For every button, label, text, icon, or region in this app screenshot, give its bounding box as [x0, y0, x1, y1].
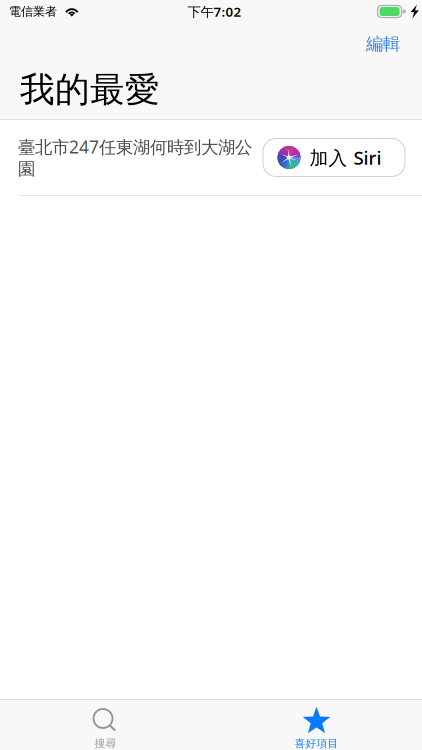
staticText: 電信業者 — [9, 4, 57, 19]
staticText: 搜尋 — [94, 737, 116, 750]
staticText: 臺北市247任東湖何時到大湖公園 — [18, 135, 252, 180]
button[interactable]: 加入 Siri — [263, 138, 405, 176]
staticText: 編輯 — [366, 33, 400, 55]
staticText: 喜好項目 — [294, 737, 338, 750]
staticText: 加入 Siri — [309, 145, 381, 170]
button[interactable]: 搜尋 — [0, 700, 211, 750]
button[interactable]: 喜好項目 — [211, 700, 422, 750]
staticText: 下午7:02 — [187, 3, 241, 20]
staticText: 我的最愛 — [20, 68, 160, 111]
button[interactable]: 編輯 — [350, 20, 422, 64]
